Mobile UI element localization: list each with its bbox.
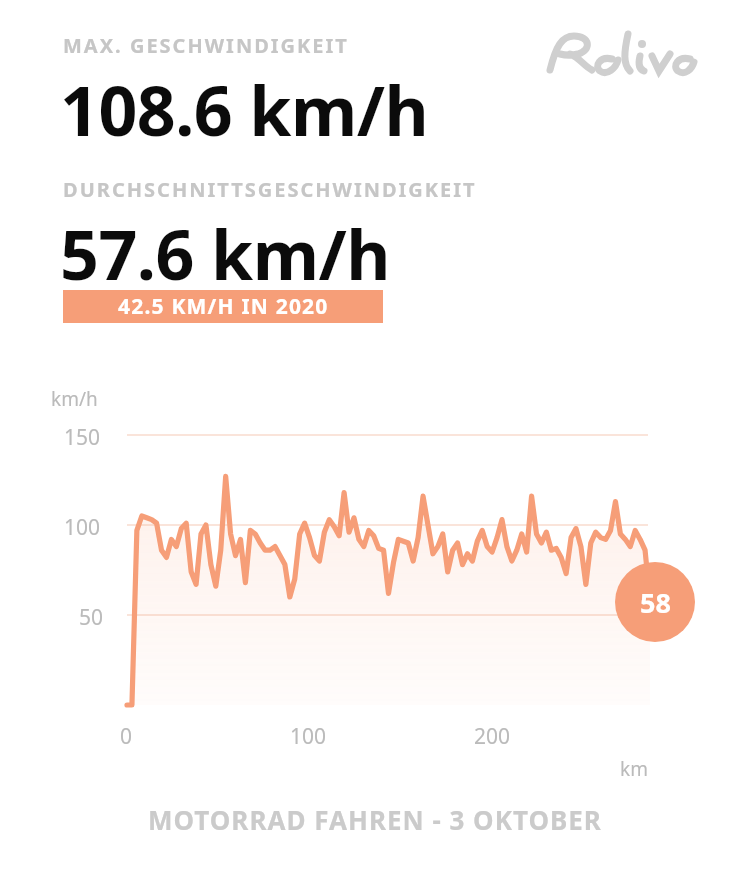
staticText: 150 — [64, 423, 101, 452]
staticText: km — [620, 756, 648, 782]
button[interactable]: 42.5 KM/H IN 2020 — [63, 290, 383, 323]
button[interactable]: Final speed 58 km/h — [615, 562, 695, 642]
staticText: 0 — [120, 722, 133, 751]
staticText: 42.5 KM/H IN 2020 — [118, 292, 329, 321]
staticText: 200 — [474, 722, 511, 751]
staticText: MOTORRAD FAHREN - 3 OKTOBER — [148, 802, 602, 837]
staticText: 100 — [290, 722, 327, 751]
staticText: 57.6 km/h — [60, 207, 390, 300]
staticText: 108.6 km/h — [60, 63, 429, 156]
staticText: 100 — [64, 513, 101, 542]
button[interactable]: Relive — [540, 26, 700, 82]
staticText: DURCHSCHNITTSGESCHWINDIGKEIT — [63, 176, 477, 203]
staticText: 58 — [640, 584, 671, 621]
staticText: MAX. GESCHWINDIGKEIT — [63, 32, 349, 59]
staticText: km/h — [51, 386, 98, 412]
staticText: 50 — [79, 603, 104, 632]
